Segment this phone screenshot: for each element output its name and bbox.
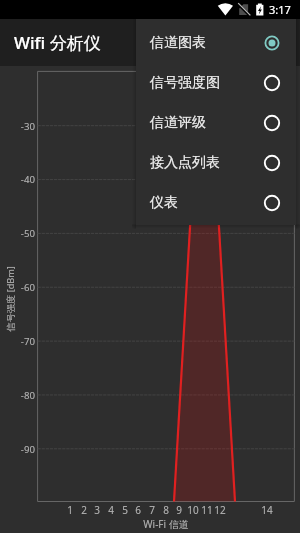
staticText: 6 — [128, 503, 148, 517]
staticText: 仪表 — [150, 194, 263, 212]
button[interactable]: 信号强度图 — [136, 63, 296, 103]
button[interactable]: 接入点列表 — [136, 143, 296, 183]
staticText: 3 — [87, 503, 107, 517]
staticText: -50 — [0, 227, 35, 240]
staticText: 9 — [169, 503, 189, 517]
staticText: -70 — [0, 335, 35, 348]
staticText: 接入点列表 — [150, 154, 263, 172]
staticText: -80 — [0, 389, 35, 402]
staticText: 10 — [183, 503, 203, 517]
staticText: 8 — [156, 503, 176, 517]
staticText: 7 — [142, 503, 162, 517]
button[interactable]: 仪表 — [136, 183, 296, 223]
staticText: 1 — [60, 503, 80, 517]
staticText: -90 — [0, 443, 35, 456]
staticText: 12 — [210, 503, 230, 517]
staticText: -30 — [0, 120, 35, 133]
button[interactable]: 信道评级 — [136, 103, 296, 143]
staticText: Wi-Fi 信道 — [131, 517, 201, 531]
button[interactable]: Wifi 分析仪 — [0, 19, 136, 66]
button[interactable]: 信道图表 — [136, 23, 296, 63]
staticText: 4 — [101, 503, 121, 517]
staticText: 信号强度图 — [150, 74, 263, 92]
staticText: 14 — [257, 503, 277, 517]
staticText: -60 — [0, 281, 35, 294]
staticText: 信道评级 — [150, 114, 263, 132]
staticText: 2 — [74, 503, 94, 517]
staticText: 信号强度 [dBm] — [3, 265, 16, 331]
staticText: 5 — [115, 503, 135, 517]
staticText: -40 — [0, 173, 35, 186]
staticText: 11 — [197, 503, 217, 517]
other: Wi-Fi connected, no SIM card, battery ch… — [0, 0, 300, 19]
staticText: Wifi 分析仪 — [14, 31, 101, 54]
staticText: 3:17 — [269, 2, 291, 17]
other: Wi-Fi channel graph — [0, 0, 300, 533]
staticText: 信道图表 — [150, 34, 263, 52]
